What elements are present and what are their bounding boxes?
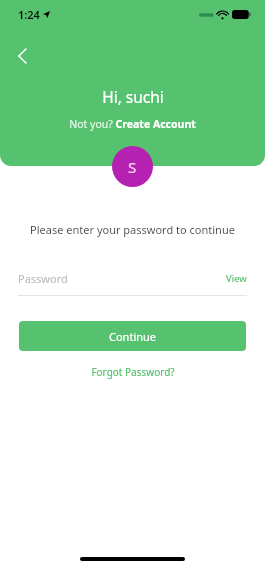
staticText: Password [18, 271, 226, 286]
button[interactable]: Not you? Create Account [69, 117, 196, 131]
staticText: Not you? Create Account [69, 117, 196, 131]
staticText: View [226, 272, 247, 285]
button[interactable]: Back [4, 38, 40, 74]
button[interactable]: View [226, 272, 247, 285]
button[interactable]: Password [18, 271, 247, 286]
staticText: S [128, 157, 137, 177]
button[interactable]: Profile avatar [112, 146, 153, 187]
staticText: Hi, suchi [102, 86, 164, 107]
staticText: Continue [109, 329, 157, 344]
staticText: Please enter your password to continue [30, 222, 235, 237]
button[interactable]: Forgot Password? [91, 365, 175, 379]
staticText: Forgot Password? [91, 365, 175, 379]
staticText: 1:24 [18, 7, 40, 22]
button[interactable]: Continue [19, 321, 246, 351]
